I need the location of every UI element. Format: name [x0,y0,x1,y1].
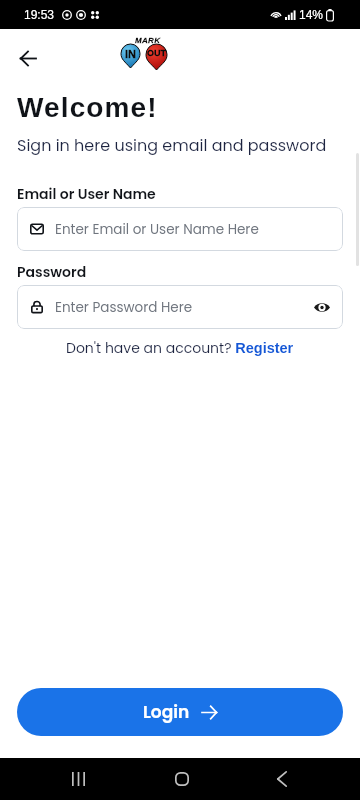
button[interactable]: Back [261,758,303,800]
staticText: 19:53 [24,8,55,21]
staticText: Password [17,262,87,282]
button[interactable]: Home [161,758,203,800]
button[interactable]: Back [6,36,50,80]
staticText: 14% [299,8,324,21]
button[interactable]: Enter Password Here [17,285,343,329]
button[interactable]: Login [17,688,343,736]
staticText: Welcome! [17,92,158,123]
staticText: Enter Email or User Name Here [55,220,259,239]
staticText: Enter Password Here [55,298,193,317]
button[interactable]: Show password [312,297,332,317]
button[interactable]: Recents [57,758,99,800]
staticText: MARK [135,36,161,45]
button[interactable]: Don't have an account? Register [66,338,294,358]
staticText: Sign in here using email and password [17,134,327,156]
staticText: IN [125,48,136,60]
button[interactable]: Enter Email or User Name Here [17,207,343,251]
staticText: OUT [147,48,166,58]
staticText: Login [143,700,190,724]
staticText: Email or User Name [17,184,156,204]
